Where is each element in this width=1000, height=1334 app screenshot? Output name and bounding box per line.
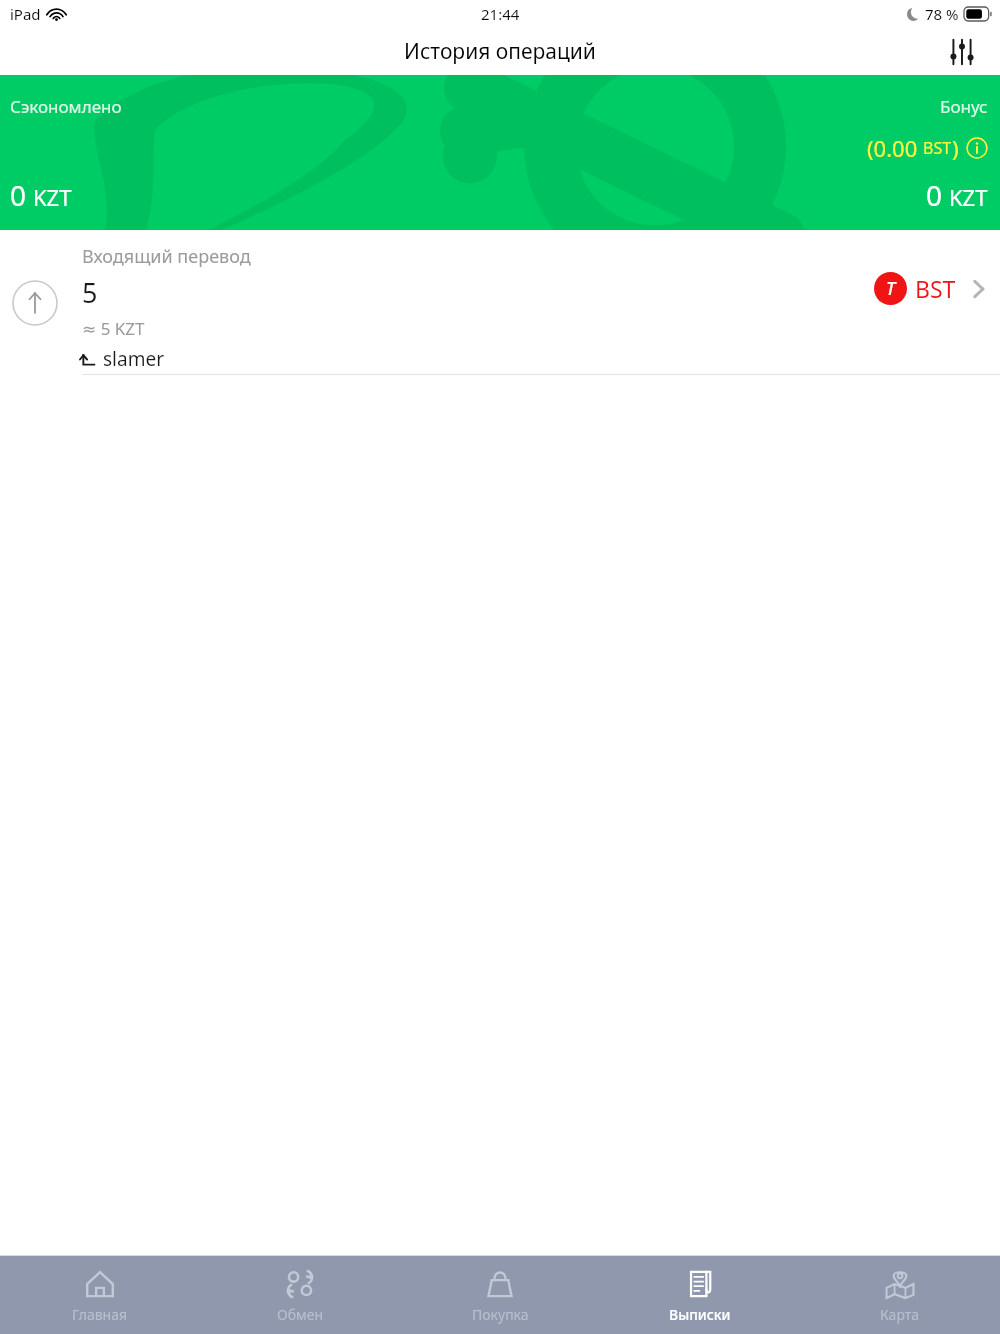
button[interactable]: Карта bbox=[800, 1256, 1000, 1334]
staticText: 21:44 bbox=[481, 4, 520, 24]
button[interactable]: Покупка bbox=[400, 1256, 600, 1334]
staticText: KZT bbox=[949, 182, 988, 212]
staticText: ) bbox=[952, 133, 959, 163]
staticText: iPad bbox=[10, 4, 41, 24]
staticText: Главная bbox=[72, 1305, 128, 1324]
button[interactable]: Главная bbox=[0, 1256, 200, 1334]
staticText: BST bbox=[923, 137, 952, 159]
staticText: slamer bbox=[103, 346, 164, 372]
staticText: BST bbox=[915, 273, 956, 304]
button[interactable]: Filter bbox=[942, 32, 982, 72]
staticText: 0 bbox=[10, 176, 27, 214]
staticText: История операций bbox=[404, 37, 596, 66]
staticText: Входящий перевод bbox=[82, 244, 251, 269]
button[interactable]: Info bbox=[966, 137, 988, 159]
staticText: 0 bbox=[926, 176, 943, 214]
staticText: (0.00 bbox=[867, 133, 923, 163]
staticText: Выписки bbox=[669, 1305, 731, 1324]
staticText: Бонус bbox=[940, 95, 988, 118]
staticText: KZT bbox=[33, 182, 72, 212]
staticText: Карта bbox=[880, 1305, 920, 1324]
button[interactable]: Обмен bbox=[200, 1256, 400, 1334]
button[interactable]: Входящий перевод bbox=[0, 230, 1000, 375]
staticText: 5 bbox=[82, 274, 98, 311]
staticText: T bbox=[886, 276, 896, 301]
staticText: Сэкономлено bbox=[10, 95, 122, 118]
staticText: Покупка bbox=[472, 1305, 529, 1324]
staticText: ≈ 5 KZT bbox=[82, 317, 145, 340]
staticText: 78 % bbox=[925, 4, 959, 24]
staticText: Обмен bbox=[277, 1305, 324, 1324]
button[interactable]: Выписки bbox=[600, 1256, 800, 1334]
